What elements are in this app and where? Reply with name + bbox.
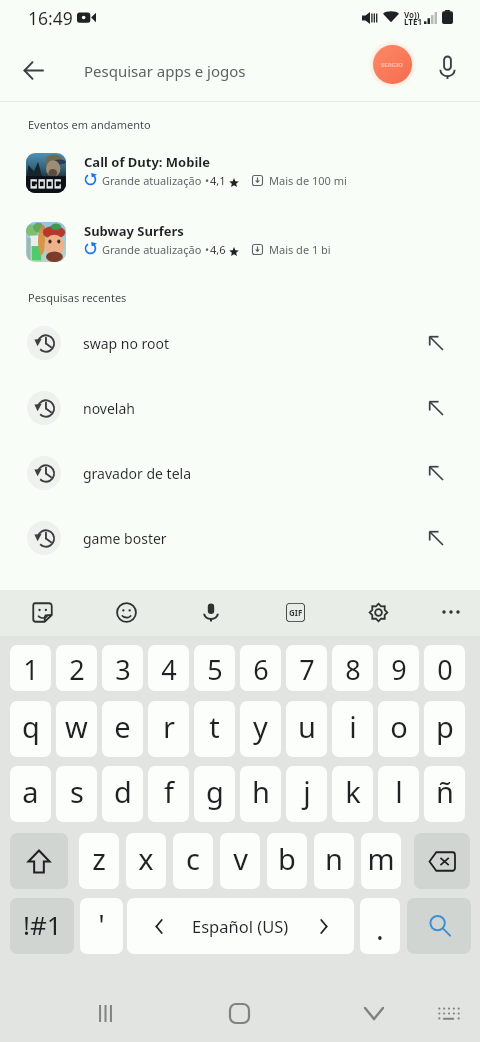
staticText: s <box>70 772 84 811</box>
staticText: c <box>186 839 200 878</box>
button[interactable]: b <box>267 833 307 889</box>
button[interactable]: 0 <box>424 645 465 691</box>
staticText: Subway Surfers <box>84 222 184 240</box>
button[interactable]: 3 <box>102 645 143 691</box>
staticText: Mais de 100 mi <box>269 173 347 188</box>
button[interactable]: Backspace <box>414 833 470 889</box>
button[interactable]: 7 <box>286 645 327 691</box>
staticText: 4,6 <box>210 242 226 257</box>
button[interactable]: v <box>220 833 260 889</box>
staticText: GIF <box>289 607 303 618</box>
button[interactable]: Pesquisar <box>407 898 471 954</box>
button[interactable]: Início <box>217 991 261 1035</box>
staticText: SERGIO <box>381 61 404 69</box>
button[interactable]: ñ <box>424 766 465 822</box>
button[interactable]: u <box>286 701 327 757</box>
staticText: Español (US) <box>192 915 289 937</box>
other: Inserir <box>429 466 443 480</box>
button[interactable]: Español (US) <box>127 898 354 954</box>
staticText: p <box>436 707 454 746</box>
button[interactable]: g <box>194 766 235 822</box>
button[interactable]: Símbolos <box>10 898 74 954</box>
staticText: LTE1 <box>404 16 422 27</box>
button[interactable]: z <box>79 833 119 889</box>
button[interactable]: c <box>173 833 213 889</box>
button[interactable]: n <box>314 833 354 889</box>
button[interactable]: q <box>10 701 51 757</box>
staticText: g <box>206 772 224 811</box>
button[interactable]: swap no root <box>0 310 480 375</box>
button[interactable]: y <box>240 701 281 757</box>
staticText: Grande atualização <box>102 173 202 188</box>
button[interactable]: e <box>102 701 143 757</box>
staticText: j <box>303 772 311 811</box>
button[interactable]: GIF <box>279 596 311 628</box>
staticText: u <box>298 707 316 746</box>
staticText: 0 <box>437 651 453 688</box>
button[interactable]: Conta do Google <box>368 40 417 89</box>
staticText: ' <box>98 905 105 944</box>
button[interactable]: o <box>378 701 419 757</box>
button[interactable]: 5 <box>194 645 235 691</box>
staticText: 6 <box>253 651 269 688</box>
button[interactable]: h <box>240 766 281 822</box>
staticText: novelah <box>83 399 135 418</box>
staticText: Pesquisar apps e jogos <box>84 61 246 81</box>
button[interactable]: Ocultar teclado <box>352 991 396 1035</box>
button[interactable]: 2 <box>56 645 97 691</box>
staticText: k <box>345 772 361 811</box>
button[interactable]: r <box>148 701 189 757</box>
staticText: w <box>65 707 88 746</box>
staticText: v <box>233 839 248 878</box>
staticText: • <box>205 242 210 257</box>
button[interactable]: game boster <box>0 505 480 570</box>
staticText: 1 <box>23 651 39 688</box>
button[interactable]: d <box>102 766 143 822</box>
button[interactable]: k <box>332 766 373 822</box>
button[interactable]: 1 <box>10 645 51 691</box>
staticText: 5 <box>207 651 223 688</box>
button[interactable]: Voltar <box>10 47 56 93</box>
staticText: d <box>114 772 132 811</box>
staticText: h <box>252 772 270 811</box>
button[interactable]: Ditado por voz <box>195 596 227 628</box>
button[interactable]: s <box>56 766 97 822</box>
button[interactable]: w <box>56 701 97 757</box>
button[interactable]: f <box>148 766 189 822</box>
staticText: 4,1 <box>210 173 226 188</box>
button[interactable]: 6 <box>240 645 281 691</box>
button[interactable]: Configurações do teclado <box>362 596 394 628</box>
button[interactable]: Alternar teclado <box>427 991 471 1035</box>
button[interactable]: Pesquisa por voz <box>425 45 470 90</box>
button[interactable]: Stickers <box>26 596 58 628</box>
staticText: f <box>164 772 174 811</box>
button[interactable]: Pesquisar apps e jogos <box>62 40 362 101</box>
button[interactable]: 8 <box>332 645 373 691</box>
button[interactable]: i <box>332 701 373 757</box>
staticText: swap no root <box>83 334 170 353</box>
staticText: a <box>22 772 39 811</box>
button[interactable]: m <box>361 833 401 889</box>
button[interactable]: x <box>126 833 166 889</box>
button[interactable]: l <box>378 766 419 822</box>
button[interactable]: gravador de tela <box>0 440 480 505</box>
button[interactable]: t <box>194 701 235 757</box>
button[interactable]: Emoji <box>110 596 142 628</box>
button[interactable]: Recentes <box>83 991 127 1035</box>
button[interactable]: Shift <box>10 833 68 889</box>
button[interactable]: Mais opções <box>435 596 467 628</box>
staticText: Mais de 1 bi <box>269 242 331 257</box>
button[interactable]: Subway Surfers <box>0 211 480 271</box>
button[interactable]: ' <box>80 898 123 954</box>
button[interactable]: Call of Duty: Mobile <box>0 142 480 202</box>
button[interactable]: p <box>424 701 465 757</box>
button[interactable]: novelah <box>0 375 480 440</box>
other: Inserir <box>429 401 443 415</box>
button[interactable]: a <box>10 766 51 822</box>
button[interactable]: 4 <box>148 645 189 691</box>
button[interactable]: j <box>286 766 327 822</box>
button[interactable]: 9 <box>378 645 419 691</box>
button[interactable]: . <box>360 898 400 954</box>
staticText: Grande atualização <box>102 242 202 257</box>
staticText: 8 <box>345 651 361 688</box>
